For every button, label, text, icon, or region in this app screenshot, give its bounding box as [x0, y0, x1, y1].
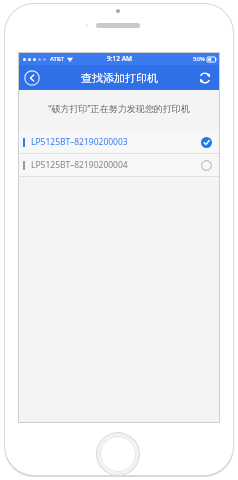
button[interactable]: Back	[23, 69, 41, 87]
staticText: LP5125BT–82190200003	[31, 136, 128, 148]
button[interactable]: Refresh	[196, 69, 214, 87]
staticText: 查找添加打印机	[81, 71, 158, 85]
staticText: AT&T	[50, 55, 64, 63]
staticText: “硕方打印”正在努力发现您的打印机	[48, 102, 190, 114]
staticText: 9:12 AM	[107, 54, 132, 63]
staticText: LP5125BT–82190200004	[31, 159, 128, 171]
staticText: 50%	[193, 55, 205, 63]
button[interactable]: LP5125BT–82190200003	[18, 131, 220, 153]
button[interactable]: LP5125BT–82190200004	[18, 154, 220, 176]
